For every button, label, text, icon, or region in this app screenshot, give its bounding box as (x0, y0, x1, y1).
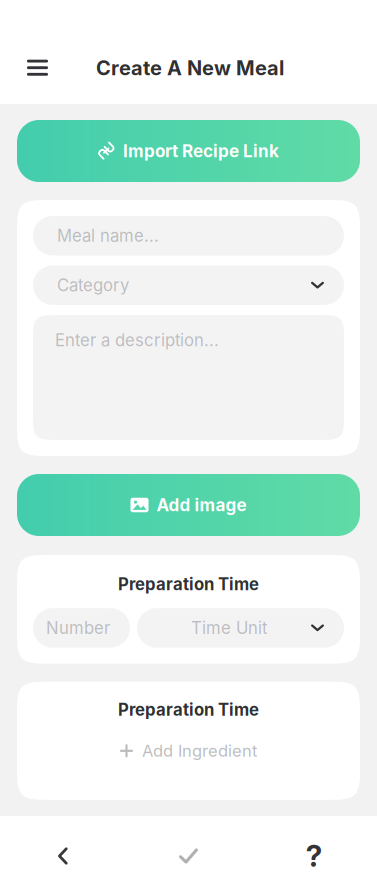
staticText: ? (306, 838, 323, 874)
staticText: Meal name... (57, 226, 159, 246)
staticText: Category (57, 275, 129, 295)
staticText: Number (46, 618, 110, 638)
button[interactable]: Time Unit (137, 608, 344, 648)
button[interactable]: Save (126, 820, 251, 892)
button[interactable]: Add Ingredient (120, 741, 257, 761)
staticText: Time Unit (191, 618, 267, 638)
button[interactable]: Back (0, 820, 126, 892)
button[interactable]: Add image (17, 474, 360, 536)
staticText: Preparation Time (118, 574, 259, 594)
button[interactable]: Menu (0, 36, 96, 100)
button[interactable]: Number (33, 608, 130, 648)
staticText: Add image (156, 495, 246, 515)
button[interactable]: Help (251, 820, 377, 892)
staticText: Enter a description... (55, 330, 219, 350)
staticText: Import Recipe Link (123, 141, 279, 161)
staticText: Add Ingredient (142, 741, 257, 761)
staticText: Preparation Time (118, 700, 259, 720)
button[interactable]: Meal name... (33, 216, 344, 255)
staticText: Create A New Meal (96, 56, 284, 80)
button[interactable]: Import Recipe Link (17, 120, 360, 182)
button[interactable]: Category (33, 265, 344, 305)
